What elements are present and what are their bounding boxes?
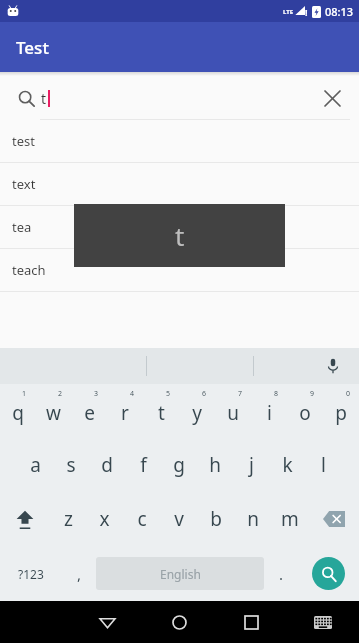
button[interactable]: Backspace xyxy=(308,492,359,546)
staticText: t xyxy=(175,218,185,253)
staticText: . xyxy=(279,564,284,584)
staticText: t xyxy=(158,400,165,426)
staticText: b xyxy=(210,506,222,532)
button[interactable]: English xyxy=(96,557,264,590)
staticText: o xyxy=(299,400,311,426)
staticText: u xyxy=(227,400,239,426)
staticText: q xyxy=(12,400,24,426)
staticText: , xyxy=(77,564,82,584)
staticText: s xyxy=(66,452,76,478)
button[interactable]: Back xyxy=(71,601,143,643)
button[interactable]: 3 xyxy=(71,384,107,438)
button[interactable]: x xyxy=(86,492,123,546)
button[interactable]: 9 xyxy=(287,384,323,438)
staticText: t xyxy=(41,89,47,108)
staticText: text xyxy=(12,175,36,193)
staticText: c xyxy=(137,506,147,532)
button[interactable]: 7 xyxy=(215,384,251,438)
button[interactable]: m xyxy=(271,492,308,546)
button[interactable]: tea xyxy=(0,206,359,249)
staticText: 5 xyxy=(166,389,171,399)
button[interactable]: s xyxy=(53,438,89,492)
staticText: test xyxy=(12,132,35,150)
staticText: English xyxy=(160,566,201,582)
staticText: p xyxy=(335,400,347,426)
button[interactable]: 2 xyxy=(35,384,71,438)
button[interactable]: , xyxy=(62,546,96,601)
button[interactable]: b xyxy=(197,492,234,546)
staticText: k xyxy=(282,452,293,478)
staticText: m xyxy=(281,506,299,532)
staticText: 1 xyxy=(22,389,27,399)
staticText: r xyxy=(121,400,129,426)
staticText: 4 xyxy=(130,389,135,399)
button[interactable]: Home xyxy=(143,601,215,643)
staticText: 6 xyxy=(202,389,207,399)
staticText: Test xyxy=(16,36,49,59)
staticText: 7 xyxy=(238,389,243,399)
button[interactable]: d xyxy=(89,438,125,492)
button[interactable]: Recents xyxy=(215,601,287,643)
button[interactable]: n xyxy=(234,492,271,546)
button[interactable]: h xyxy=(197,438,233,492)
staticText: 3 xyxy=(94,389,99,399)
staticText: x xyxy=(99,506,110,532)
button[interactable]: Switch keyboard xyxy=(287,601,359,643)
staticText: 2 xyxy=(58,389,63,399)
staticText: LTE xyxy=(283,8,294,16)
staticText: tea xyxy=(12,218,32,236)
staticText: teach xyxy=(12,261,46,279)
button[interactable]: Shift xyxy=(0,492,50,546)
staticText: l xyxy=(321,452,326,478)
button[interactable]: text xyxy=(0,163,359,206)
staticText: 9 xyxy=(310,389,315,399)
button[interactable]: 4 xyxy=(107,384,143,438)
button[interactable]: f xyxy=(125,438,161,492)
button[interactable]: g xyxy=(161,438,197,492)
button[interactable]: 6 xyxy=(179,384,215,438)
button[interactable]: l xyxy=(305,438,341,492)
button[interactable]: 1 xyxy=(0,384,35,438)
staticText: 8 xyxy=(274,389,279,399)
staticText: n xyxy=(247,506,259,532)
staticText: y xyxy=(192,400,202,426)
button[interactable]: Voice input xyxy=(319,352,347,380)
button[interactable]: 0 xyxy=(323,384,359,438)
button[interactable]: Clear xyxy=(317,83,347,113)
staticText: w xyxy=(46,400,61,426)
staticText: a xyxy=(30,452,41,478)
staticText: 0 xyxy=(346,389,351,399)
staticText: ?123 xyxy=(18,566,44,582)
button[interactable]: c xyxy=(123,492,160,546)
staticText: g xyxy=(173,452,185,478)
staticText: h xyxy=(209,452,221,478)
button[interactable]: . xyxy=(264,546,298,601)
button[interactable]: test xyxy=(0,120,359,163)
button[interactable]: v xyxy=(160,492,197,546)
button[interactable]: teach xyxy=(0,249,359,292)
staticText: ! xyxy=(305,6,308,18)
staticText: 08:13 xyxy=(325,4,354,19)
button[interactable]: k xyxy=(269,438,305,492)
button[interactable]: ?123 xyxy=(0,546,62,601)
button[interactable]: 8 xyxy=(251,384,287,438)
staticText: d xyxy=(101,452,113,478)
staticText: f xyxy=(140,452,147,478)
staticText: v xyxy=(174,506,184,532)
staticText: z xyxy=(64,506,73,532)
button[interactable]: j xyxy=(233,438,269,492)
button[interactable]: 5 xyxy=(143,384,179,438)
button[interactable]: Search xyxy=(12,84,40,112)
button[interactable]: Search xyxy=(312,557,345,590)
staticText: e xyxy=(84,400,95,426)
staticText: j xyxy=(249,452,254,478)
button[interactable]: a xyxy=(18,438,53,492)
staticText: i xyxy=(267,400,272,426)
button[interactable]: z xyxy=(50,492,86,546)
